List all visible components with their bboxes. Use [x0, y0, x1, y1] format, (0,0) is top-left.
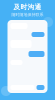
staticText: 及时沟通	[13, 3, 41, 11]
staticText: 随时随地保持联系	[11, 12, 43, 17]
button[interactable]: Send	[36, 85, 44, 90]
